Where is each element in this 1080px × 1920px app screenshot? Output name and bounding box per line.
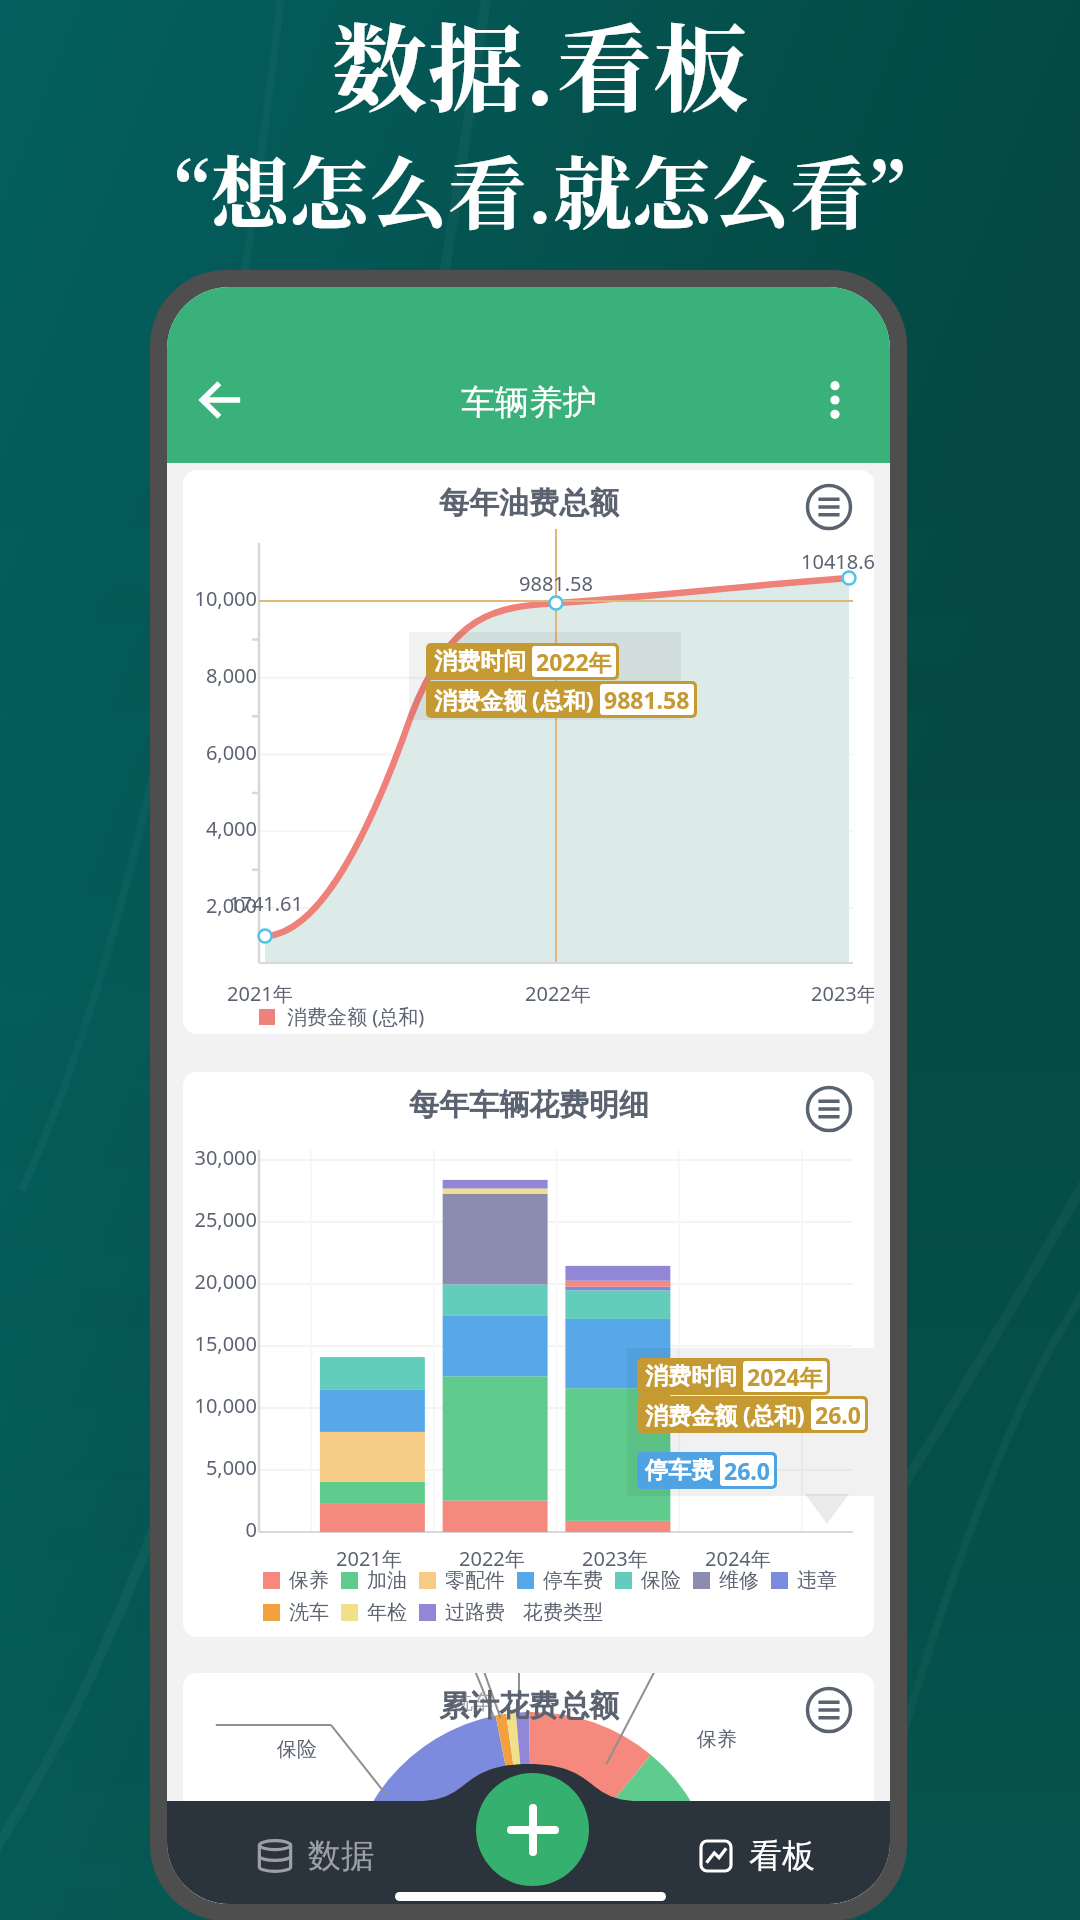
staticText: 2022年 xyxy=(536,646,612,677)
staticText: 保险 xyxy=(277,1737,317,1762)
staticText: 2021年 xyxy=(227,980,293,1007)
button[interactable]: Add xyxy=(476,1773,589,1886)
staticText: 8,000 xyxy=(183,662,257,689)
staticText: 年检 xyxy=(367,1600,407,1625)
staticText: 过路费 xyxy=(445,1600,505,1625)
staticText: 0 xyxy=(183,1516,257,1543)
staticText: 每年车辆花费明细 xyxy=(409,1086,649,1124)
staticText: 10,000 xyxy=(183,1392,257,1419)
staticText: 看板 xyxy=(749,1835,815,1877)
staticText: 2022年 xyxy=(459,1545,525,1572)
staticText: 数据.看板 xyxy=(332,0,749,132)
staticText: 零配件 xyxy=(445,1568,505,1593)
button[interactable]: Back xyxy=(178,357,264,443)
staticText: 2024年 xyxy=(705,1545,771,1572)
staticText: 洗车 xyxy=(289,1600,329,1625)
staticText: 10418.6 xyxy=(801,548,874,575)
staticText: 26.0 xyxy=(815,1399,861,1430)
button[interactable]: 看板 xyxy=(699,1826,815,1886)
button[interactable]: Chart menu xyxy=(802,480,856,534)
staticText: 消费金额 (总和) xyxy=(645,1399,805,1430)
staticText: 2023年 xyxy=(811,980,874,1007)
staticText: 消费时间 xyxy=(434,647,526,676)
staticText: 花费类型 xyxy=(523,1600,603,1625)
staticText: 4,000 xyxy=(183,815,257,842)
staticText: 累计花费总额 xyxy=(439,1687,619,1725)
staticText: 维修 xyxy=(719,1568,759,1593)
staticText: 车辆养护 xyxy=(461,381,597,424)
staticText: 6,000 xyxy=(183,739,257,766)
staticText: 保养 xyxy=(289,1568,329,1593)
staticText: 2022年 xyxy=(525,980,591,1007)
staticText: 保养 xyxy=(697,1727,737,1752)
staticText: 2024年 xyxy=(747,1361,823,1392)
staticText: 30,000 xyxy=(183,1144,257,1171)
staticText: 26.0 xyxy=(724,1455,770,1486)
staticText: 数据 xyxy=(308,1835,374,1877)
staticText: 停车费 xyxy=(543,1568,603,1593)
staticText: 1741.61 xyxy=(229,890,303,917)
staticText: 2023年 xyxy=(582,1545,648,1572)
staticText: 保险 xyxy=(641,1568,681,1593)
staticText: 消费金额 (总和) xyxy=(287,1003,425,1030)
staticText: 2021年 xyxy=(336,1545,402,1572)
button[interactable]: Chart menu xyxy=(802,1683,856,1737)
staticText: 停车费 xyxy=(645,1456,714,1485)
staticText: 10,000 xyxy=(183,585,257,612)
staticText: 每年油费总额 xyxy=(439,484,619,522)
staticText: 消费金额 (总和) xyxy=(434,684,594,715)
staticText: 9881.58 xyxy=(519,570,593,597)
staticText: 5,000 xyxy=(183,1454,257,1481)
staticText: 15,000 xyxy=(183,1330,257,1357)
staticText: 消费时间 xyxy=(645,1362,737,1391)
button[interactable]: More options xyxy=(792,357,878,443)
staticText: 25,000 xyxy=(183,1206,257,1233)
staticText: 加油 xyxy=(367,1568,407,1593)
staticText: 2,000 xyxy=(183,892,257,919)
staticText: 20,000 xyxy=(183,1268,257,1295)
staticText: 洗车 xyxy=(453,1690,493,1715)
staticText: 违章 xyxy=(797,1568,837,1593)
staticText: 9881.58 xyxy=(604,684,690,715)
staticText: “想怎么看.就怎么看” xyxy=(174,132,906,246)
button[interactable]: 数据 xyxy=(258,1826,374,1886)
button[interactable]: Chart menu xyxy=(802,1082,856,1136)
